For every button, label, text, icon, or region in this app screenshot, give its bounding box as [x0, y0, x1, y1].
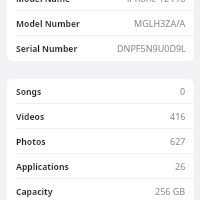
- staticText: DNPF5N9U0D9L: [117, 42, 186, 54]
- staticText: Model Name: [16, 0, 71, 5]
- staticText: Serial Number: [16, 43, 78, 55]
- staticText: Model Number: [16, 18, 80, 30]
- staticText: iPhone 12 Pro: [127, 0, 186, 4]
- staticText: Applications: [16, 161, 69, 173]
- staticText: Songs: [16, 86, 42, 98]
- button[interactable]: Model Name: [7, 0, 194, 11]
- staticText: Videos: [16, 111, 45, 123]
- button[interactable]: Songs: [7, 79, 194, 104]
- button[interactable]: Applications: [7, 154, 194, 179]
- staticText: 256 GB: [155, 185, 186, 197]
- button[interactable]: Serial Number: [7, 36, 194, 61]
- staticText: Photos: [16, 136, 46, 148]
- staticText: Capacity: [16, 186, 53, 198]
- staticText: 416: [170, 110, 186, 122]
- staticText: MGLH3ZA/A: [134, 17, 186, 29]
- button[interactable]: Capacity: [7, 179, 194, 200]
- button[interactable]: Photos: [7, 129, 194, 154]
- button[interactable]: Model Number: [7, 11, 194, 36]
- staticText: 0: [180, 85, 186, 97]
- button[interactable]: Videos: [7, 104, 194, 129]
- staticText: 627: [170, 135, 186, 147]
- staticText: 26: [175, 160, 186, 172]
